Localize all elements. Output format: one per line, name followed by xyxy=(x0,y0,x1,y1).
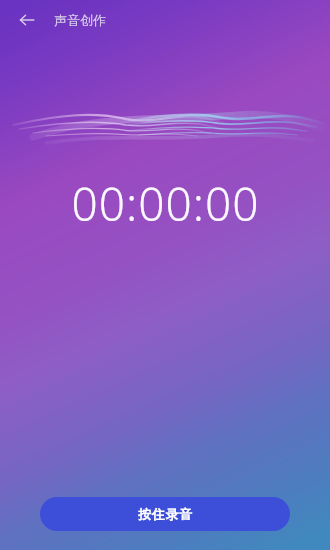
staticText: 声音创作 xyxy=(54,12,106,28)
staticText: 按住录音 xyxy=(138,506,193,522)
button[interactable]: Back xyxy=(13,6,41,34)
staticText: 00:00:00 xyxy=(71,172,260,235)
button[interactable]: 按住录音 xyxy=(40,497,290,531)
